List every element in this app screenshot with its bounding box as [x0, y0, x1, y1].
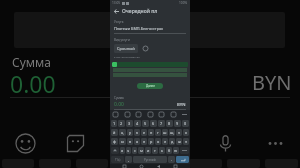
button[interactable]: Theme	[147, 111, 154, 118]
button[interactable]: н	[148, 129, 154, 136]
button[interactable]: Clipboard	[158, 111, 165, 118]
button[interactable]: я	[120, 147, 125, 154]
button[interactable]: п	[141, 138, 147, 145]
staticText: в	[129, 139, 132, 144]
button[interactable]: д	[169, 138, 175, 145]
button[interactable]: к	[134, 129, 140, 136]
button[interactable]: з	[176, 129, 182, 136]
button[interactable]: а	[134, 138, 140, 145]
button[interactable]: Stickers	[61, 129, 89, 157]
button[interactable]: Enter	[176, 156, 189, 163]
button[interactable]: ю	[173, 147, 179, 154]
button[interactable]: Search	[112, 111, 119, 118]
button[interactable]: Symbols	[111, 156, 124, 163]
staticText: ц	[121, 130, 124, 135]
button[interactable]: в	[127, 138, 133, 145]
button[interactable]: о	[155, 138, 161, 145]
button[interactable]: ц	[119, 129, 126, 136]
button[interactable]: 7	[158, 120, 165, 127]
staticText: п	[143, 139, 146, 144]
button[interactable]: Recents	[122, 164, 127, 168]
button[interactable]: 1	[111, 120, 117, 127]
button[interactable]: у	[127, 129, 133, 136]
button[interactable]: More options	[181, 111, 188, 118]
button[interactable]: Back	[156, 164, 161, 168]
button[interactable]: 4	[134, 120, 141, 127]
staticText: г	[157, 130, 159, 135]
staticText: э	[185, 139, 187, 144]
button[interactable]: 0	[182, 120, 189, 127]
button[interactable]: ж	[176, 138, 182, 145]
staticText: я	[121, 148, 124, 153]
staticText: Платежи БМП.Белгосстрах	[114, 26, 163, 31]
staticText: 7	[160, 121, 163, 126]
button[interactable]: 5	[142, 120, 149, 127]
button[interactable]: б	[166, 147, 172, 154]
button[interactable]: ,	[125, 156, 132, 163]
button[interactable]	[14, 12, 285, 48]
button[interactable]: Clipboard	[161, 129, 189, 157]
button[interactable]: р	[148, 138, 154, 145]
button[interactable]: 9	[174, 120, 181, 127]
button[interactable]: Stickers	[124, 111, 131, 118]
button[interactable]: х	[183, 129, 189, 136]
button[interactable]: 2	[118, 120, 125, 127]
button[interactable]: и	[145, 147, 151, 154]
button[interactable]	[151, 159, 184, 168]
button[interactable]: Settings	[170, 111, 177, 118]
button[interactable]: щ	[169, 129, 175, 136]
button[interactable]: л	[162, 138, 168, 145]
staticText: 5	[144, 121, 147, 126]
staticText: в том числе комиссия	[114, 55, 140, 58]
button[interactable]: Info	[142, 45, 149, 52]
button[interactable]: Space	[133, 156, 167, 163]
button[interactable]: GIF	[135, 111, 142, 118]
staticText: с	[134, 148, 136, 153]
button[interactable]: Backspace	[180, 147, 189, 154]
button[interactable]: е	[141, 129, 147, 136]
button[interactable]: ф	[111, 138, 118, 145]
button[interactable]: Back	[112, 7, 120, 15]
button[interactable]: й	[111, 129, 118, 136]
staticText: 0	[184, 121, 187, 126]
staticText: Услуга	[114, 20, 124, 24]
button[interactable]: ч	[126, 147, 131, 154]
button[interactable]: ы	[119, 138, 126, 145]
staticText: 4	[136, 121, 139, 126]
button[interactable]: .	[168, 156, 175, 163]
button[interactable]: Hide keyboard	[173, 164, 178, 168]
staticText: у	[129, 130, 131, 135]
button[interactable]: GIF	[111, 129, 139, 157]
button[interactable]: Home	[139, 164, 144, 168]
button[interactable]: ь	[159, 147, 165, 154]
button[interactable]: Далее	[137, 83, 163, 89]
button[interactable]: 3	[126, 120, 133, 127]
staticText: BYN	[177, 102, 186, 108]
button[interactable]: г	[155, 129, 161, 136]
button[interactable]: Срочный	[114, 44, 138, 53]
button[interactable]: 8	[166, 120, 173, 127]
button[interactable]: т	[152, 147, 158, 154]
button[interactable]: э	[183, 138, 189, 145]
staticText: и	[147, 148, 150, 153]
button[interactable]: Shift	[111, 147, 119, 154]
staticText: Очередной пл	[122, 8, 158, 15]
button[interactable]: Emoji	[11, 129, 39, 157]
button[interactable]: м	[138, 147, 144, 154]
staticText: х	[185, 130, 187, 135]
button[interactable]: с	[132, 147, 137, 154]
staticText: 3	[128, 121, 131, 126]
button[interactable]	[113, 159, 146, 168]
button[interactable]: Voice input	[211, 129, 239, 157]
button[interactable]: More	[261, 129, 289, 157]
button[interactable]: ш	[162, 129, 168, 136]
button[interactable]: 6	[150, 120, 157, 127]
staticText: Сумма	[114, 96, 124, 100]
staticText: м	[140, 148, 143, 153]
